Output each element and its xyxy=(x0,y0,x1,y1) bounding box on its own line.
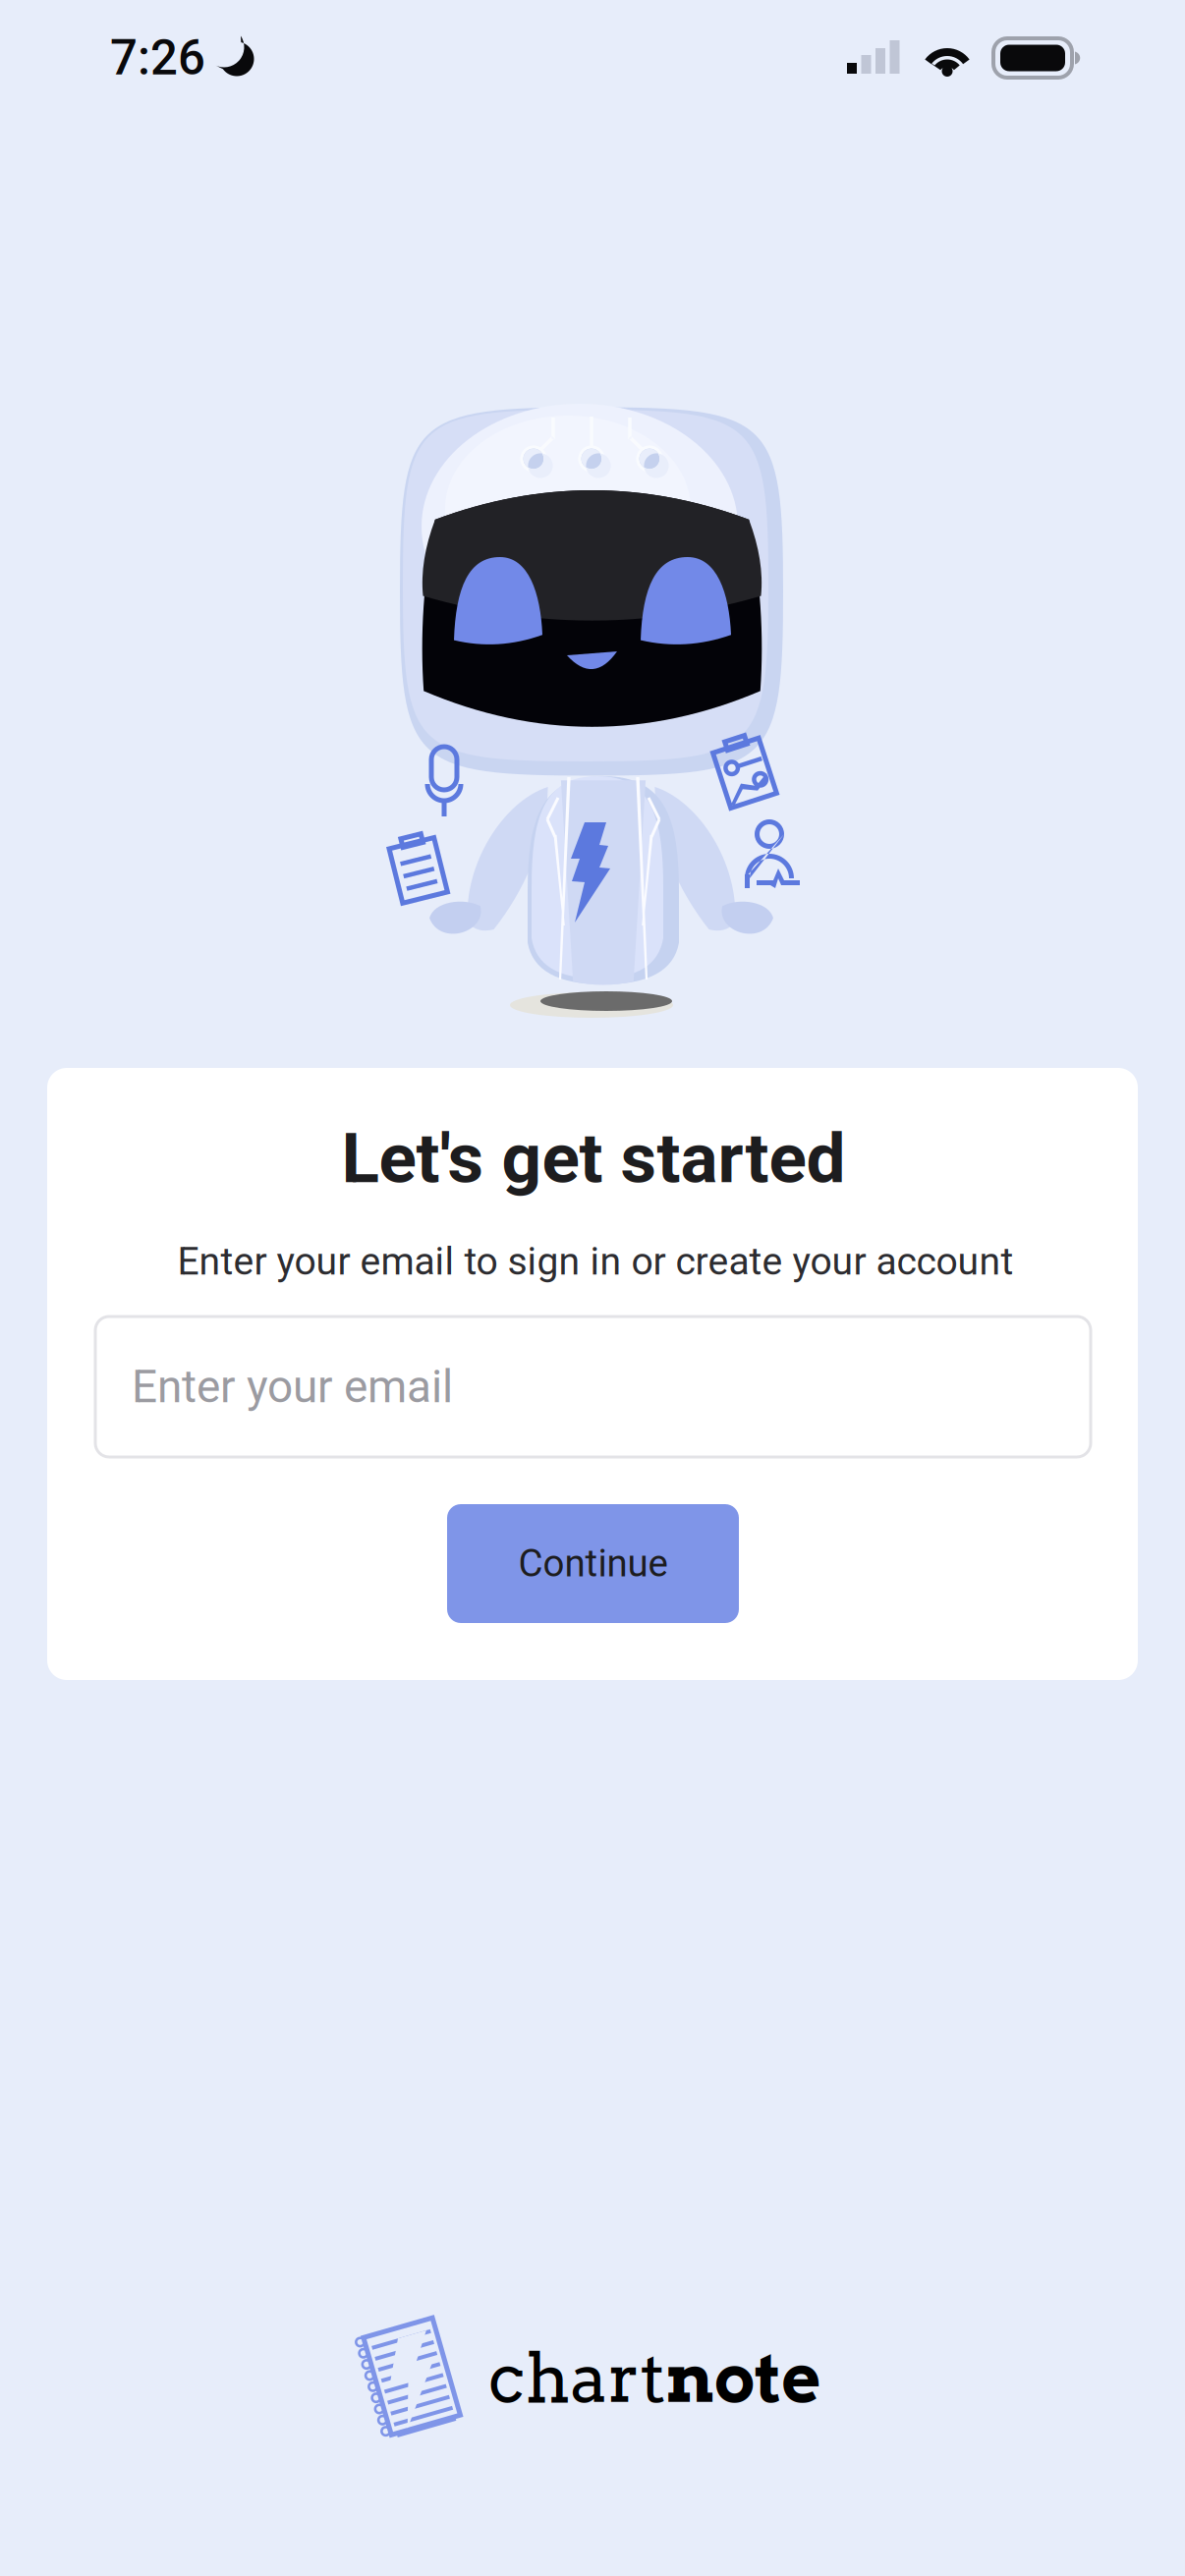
staticText: Enter your email xyxy=(132,1360,453,1413)
staticText: note xyxy=(666,2336,821,2419)
staticText: Let's get started xyxy=(341,1117,846,1199)
staticText: Enter your email to sign in or create yo… xyxy=(177,1239,1014,1284)
button[interactable]: Enter your email xyxy=(95,1316,1091,1457)
staticText: chart xyxy=(488,2336,666,2419)
staticText: Continue xyxy=(518,1541,668,1586)
button[interactable]: Continue xyxy=(447,1504,739,1623)
staticText: 7:26 xyxy=(110,30,205,86)
